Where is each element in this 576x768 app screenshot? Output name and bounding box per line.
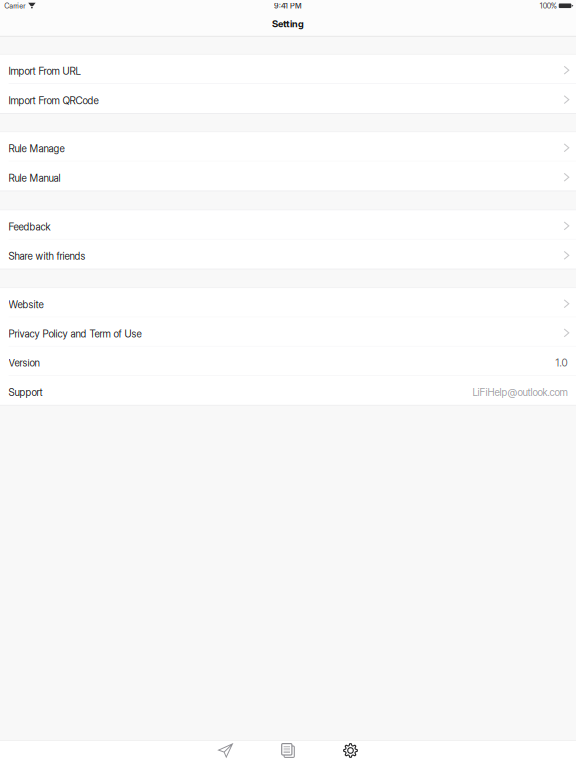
button[interactable]: Documents <box>257 741 319 760</box>
staticText: Version <box>9 357 40 369</box>
staticText: 1.0 <box>555 357 567 369</box>
button[interactable]: Send <box>194 741 257 760</box>
button[interactable]: Import From URL <box>0 55 576 84</box>
button[interactable]: Rule Manage <box>0 132 576 161</box>
button[interactable]: Import From QRCode <box>0 84 576 113</box>
staticText: Share with friends <box>9 250 86 262</box>
staticText: Rule Manage <box>9 143 65 155</box>
button[interactable]: Support <box>0 376 576 405</box>
button[interactable]: Version <box>0 346 576 376</box>
staticText: Feedback <box>9 221 51 233</box>
staticText: Import From QRCode <box>9 94 99 107</box>
staticText: Privacy Policy and Term of Use <box>9 328 142 340</box>
staticText: 9:41 PM <box>274 1 302 10</box>
staticText: 100% <box>540 1 557 10</box>
button[interactable]: Privacy Policy and Term of Use <box>0 317 576 346</box>
staticText: Rule Manual <box>9 172 61 184</box>
staticText: Website <box>9 299 44 311</box>
button[interactable]: Feedback <box>0 210 576 239</box>
button[interactable]: Settings <box>319 741 382 760</box>
staticText: Support <box>9 386 43 398</box>
staticText: LiFiHelp@outlook.com <box>472 386 567 398</box>
button[interactable]: Share with friends <box>0 239 576 269</box>
staticText: Carrier <box>4 1 25 10</box>
staticText: Import From URL <box>9 65 81 77</box>
staticText: Setting <box>272 18 304 29</box>
button[interactable]: Website <box>0 288 576 317</box>
button[interactable]: Rule Manual <box>0 161 576 190</box>
